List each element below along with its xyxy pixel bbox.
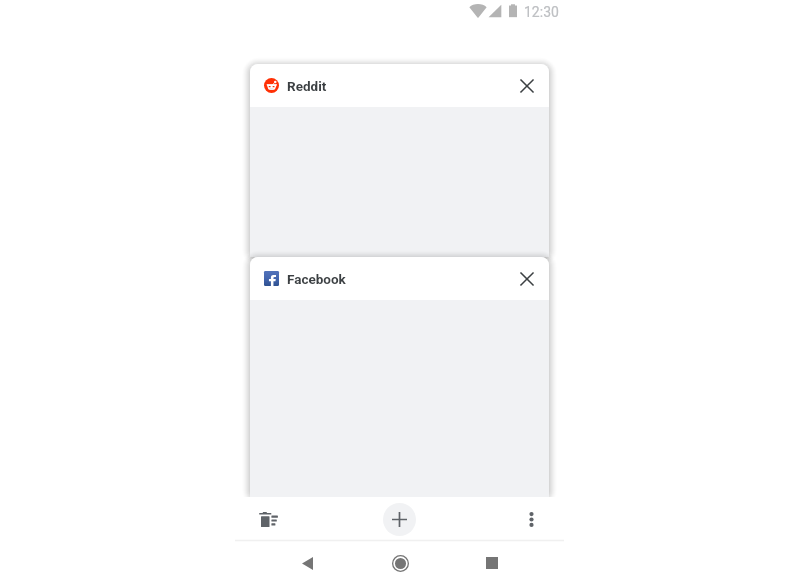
button[interactable]: Close all tabs [246, 502, 290, 536]
staticText: Facebook [287, 271, 346, 287]
button[interactable]: Close Reddit tab [510, 69, 544, 103]
button[interactable]: More options [511, 501, 551, 538]
staticText: 12:30 [524, 4, 559, 20]
button[interactable]: Facebook [250, 257, 549, 497]
button[interactable]: Recent apps [472, 548, 512, 578]
button[interactable]: Close Facebook tab [510, 262, 544, 296]
button[interactable]: New tab [383, 503, 416, 536]
button[interactable]: Reddit [250, 64, 549, 257]
button[interactable]: Back [287, 548, 327, 578]
button[interactable]: Home [380, 548, 420, 578]
staticText: Reddit [287, 78, 327, 94]
